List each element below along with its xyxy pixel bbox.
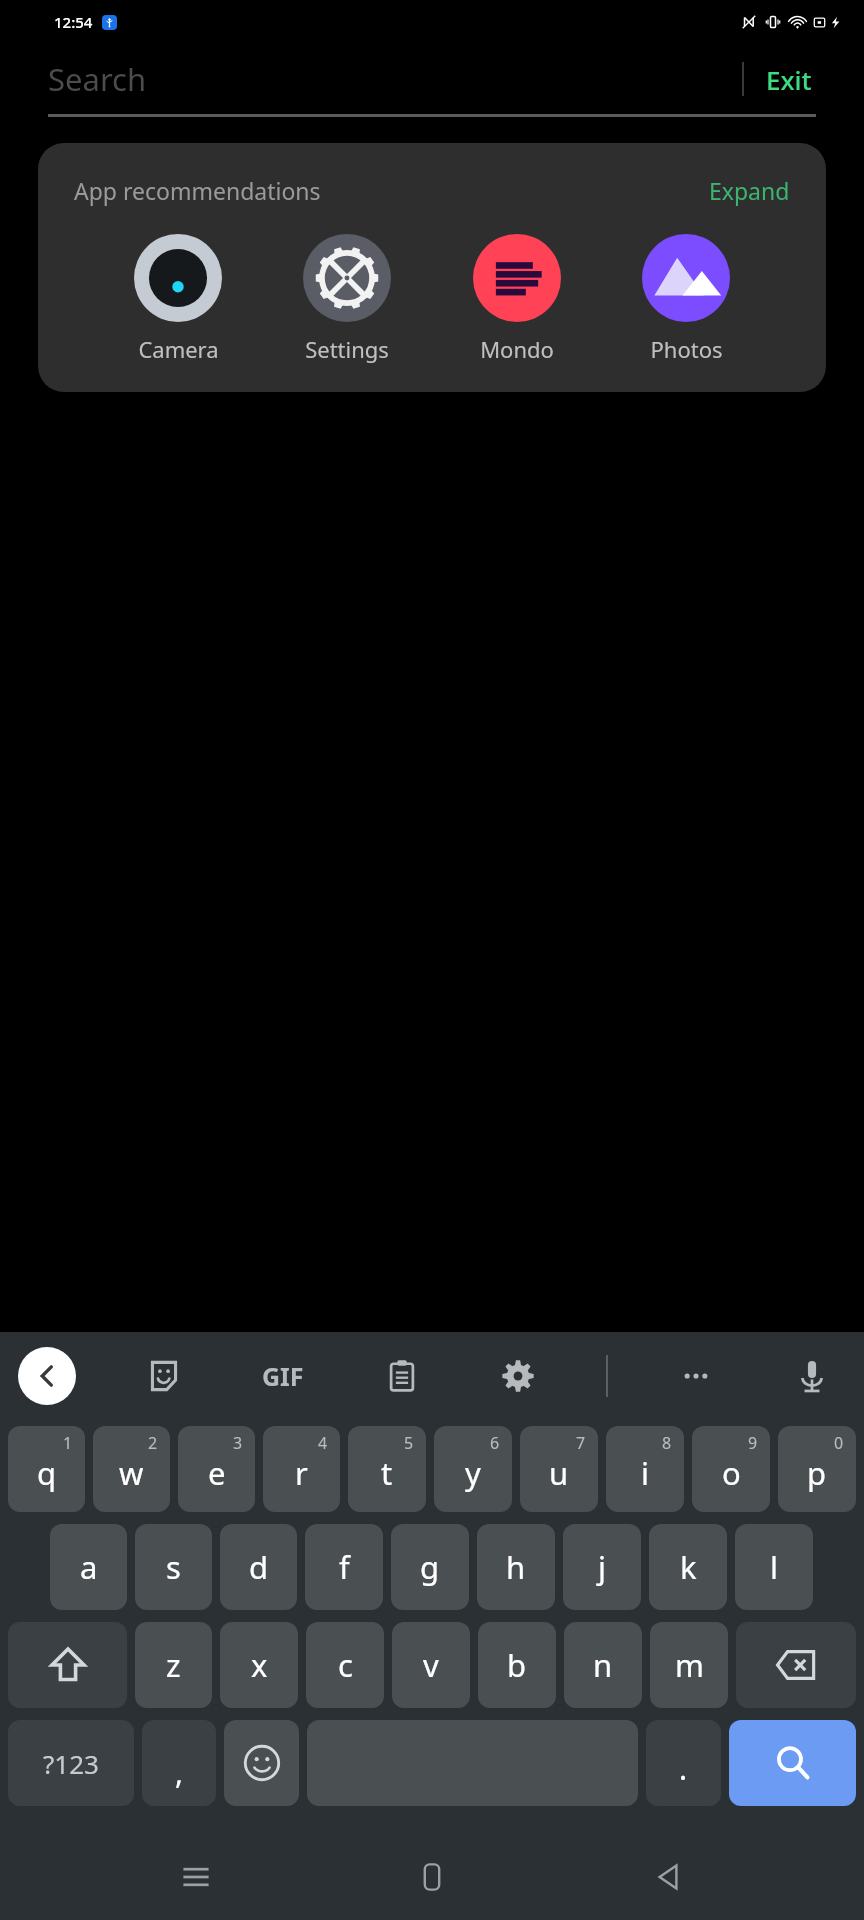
button[interactable]: m	[650, 1622, 728, 1708]
staticText: Mondo	[480, 334, 554, 364]
button[interactable]: Emoji	[224, 1720, 299, 1806]
staticText: n	[593, 1644, 613, 1686]
staticText: Photos	[650, 334, 723, 364]
button[interactable]: Camera	[130, 234, 226, 364]
staticText: l	[770, 1546, 778, 1588]
staticText: h	[506, 1546, 526, 1588]
staticText: 12:54	[54, 12, 93, 32]
button[interactable]: 4	[263, 1426, 340, 1512]
staticText: Search	[48, 58, 147, 100]
staticText: r	[295, 1452, 308, 1494]
button[interactable]: More options	[668, 1348, 724, 1404]
staticText: 9	[748, 1432, 758, 1454]
staticText: u	[549, 1452, 569, 1494]
button[interactable]: Mondo	[469, 234, 565, 364]
staticText: a	[80, 1546, 98, 1588]
staticText: v	[423, 1644, 439, 1686]
button[interactable]: 1	[8, 1426, 85, 1512]
staticText: t	[381, 1452, 393, 1494]
button[interactable]: g	[391, 1524, 469, 1610]
staticText: Exit	[766, 62, 812, 97]
staticText: Camera	[138, 334, 219, 364]
button[interactable]: 9	[692, 1426, 770, 1512]
button[interactable]: a	[50, 1524, 127, 1610]
button[interactable]: .	[646, 1720, 721, 1806]
staticText: c	[338, 1644, 353, 1686]
staticText: App recommendations	[74, 175, 321, 206]
button[interactable]: j	[563, 1524, 641, 1610]
button[interactable]: d	[220, 1524, 297, 1610]
staticText: 0	[834, 1432, 844, 1454]
staticText: j	[598, 1546, 606, 1588]
button[interactable]: Settings	[299, 234, 395, 364]
staticText: m	[675, 1644, 704, 1686]
staticText: 6	[490, 1432, 500, 1454]
button[interactable]: h	[477, 1524, 555, 1610]
button[interactable]: Recent apps	[156, 1837, 236, 1917]
button[interactable]: 2	[93, 1426, 170, 1512]
staticText: e	[208, 1452, 226, 1494]
button[interactable]: 8	[606, 1426, 684, 1512]
button[interactable]: ?123	[8, 1720, 134, 1806]
staticText: x	[251, 1644, 268, 1686]
staticText: 1	[63, 1432, 73, 1454]
staticText: i	[641, 1452, 649, 1494]
button[interactable]: Search	[729, 1720, 856, 1806]
button[interactable]: k	[649, 1524, 727, 1610]
button[interactable]: 3	[178, 1426, 255, 1512]
button[interactable]: 7	[520, 1426, 598, 1512]
button[interactable]: Backspace	[736, 1622, 856, 1708]
staticText: 2	[148, 1432, 158, 1454]
staticText: o	[722, 1452, 741, 1494]
staticText: s	[166, 1546, 181, 1588]
staticText: 3	[233, 1432, 243, 1454]
button[interactable]: 0	[778, 1426, 856, 1512]
staticText: Expand	[709, 175, 790, 206]
staticText: p	[807, 1452, 827, 1494]
staticText: GIF	[262, 1359, 304, 1393]
button[interactable]: v	[392, 1622, 470, 1708]
staticText: g	[420, 1546, 440, 1588]
button[interactable]: x	[220, 1622, 298, 1708]
staticText: .	[679, 1748, 688, 1789]
button[interactable]: Settings	[490, 1348, 546, 1404]
button[interactable]: Expand	[703, 169, 796, 212]
button[interactable]: Home	[392, 1837, 472, 1917]
button[interactable]: Shift	[8, 1622, 127, 1708]
button[interactable]: l	[735, 1524, 813, 1610]
button[interactable]: 6	[434, 1426, 512, 1512]
button[interactable]: b	[478, 1622, 556, 1708]
button[interactable]: n	[564, 1622, 642, 1708]
staticText: k	[680, 1546, 697, 1588]
staticText: Settings	[305, 334, 389, 364]
button[interactable]: Stickers	[136, 1348, 192, 1404]
button[interactable]: z	[135, 1622, 212, 1708]
staticText: 8	[662, 1432, 672, 1454]
button[interactable]: f	[305, 1524, 383, 1610]
staticText: ?123	[43, 1746, 99, 1781]
staticText: b	[507, 1644, 527, 1686]
button[interactable]: ,	[142, 1720, 216, 1806]
staticText: d	[249, 1546, 269, 1588]
button[interactable]: Voice input	[784, 1348, 840, 1404]
staticText: z	[166, 1644, 181, 1686]
staticText: y	[465, 1452, 481, 1494]
button[interactable]: 5	[348, 1426, 426, 1512]
button[interactable]: Photos	[638, 234, 734, 364]
button[interactable]: Exit	[744, 54, 834, 105]
staticText: 5	[404, 1432, 414, 1454]
button[interactable]: Clipboard	[374, 1348, 430, 1404]
button[interactable]: Back	[18, 1347, 76, 1405]
staticText: q	[37, 1452, 57, 1494]
staticText: f	[339, 1546, 350, 1588]
button[interactable]: c	[306, 1622, 384, 1708]
staticText: ,	[175, 1752, 184, 1793]
staticText: 4	[318, 1432, 328, 1454]
button[interactable]: s	[135, 1524, 212, 1610]
staticText: w	[119, 1452, 144, 1494]
button[interactable]: Back	[628, 1837, 708, 1917]
staticText: 7	[576, 1432, 586, 1454]
button[interactable]: GIF	[252, 1349, 314, 1403]
